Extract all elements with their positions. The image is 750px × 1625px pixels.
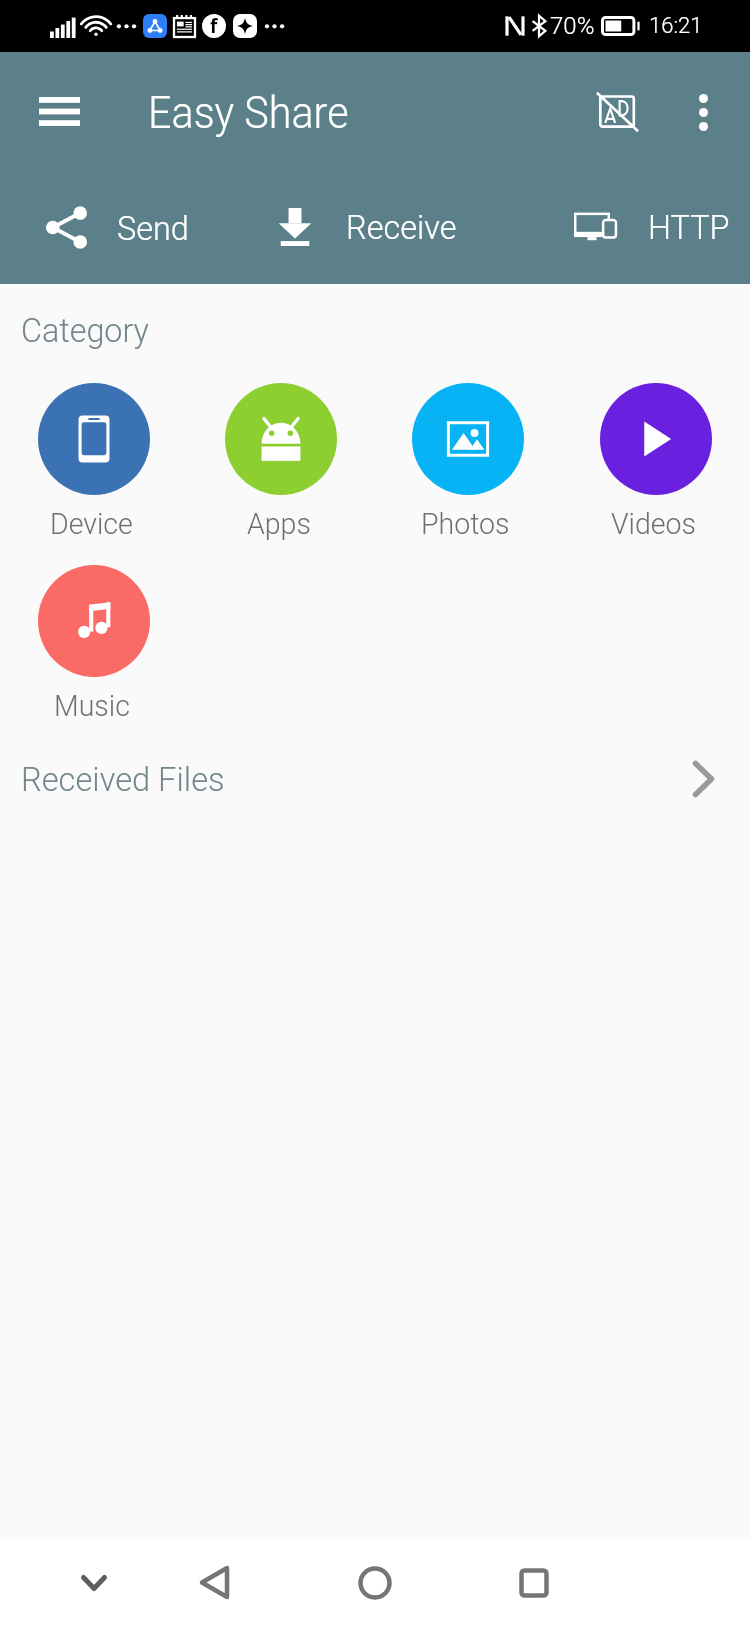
staticText: Receive — [346, 207, 457, 247]
staticText: f — [210, 14, 218, 37]
staticText: 16:21 — [649, 13, 703, 39]
staticText: Received Files — [21, 759, 225, 799]
staticText: Send — [117, 208, 190, 248]
button[interactable]: Apps — [187, 383, 374, 541]
staticText: HTTP — [648, 207, 730, 247]
button[interactable]: More options — [674, 83, 732, 141]
button[interactable]: Hide keyboard — [54, 1540, 134, 1625]
button[interactable]: Remove ads — [588, 83, 646, 141]
button[interactable]: Home — [335, 1540, 415, 1625]
staticText: Device — [50, 506, 134, 541]
button[interactable]: Photos — [374, 383, 562, 541]
button[interactable]: HTTP — [500, 197, 750, 257]
button[interactable]: Videos — [562, 383, 750, 541]
staticText: Easy Share — [148, 86, 349, 139]
button[interactable]: Recent apps — [494, 1540, 574, 1625]
button[interactable]: Received Files — [0, 733, 750, 825]
staticText: Photos — [421, 506, 510, 541]
button[interactable]: Receive — [250, 197, 500, 257]
staticText: Apps — [247, 506, 312, 541]
staticText: Music — [54, 688, 130, 723]
staticText: Category — [21, 310, 149, 350]
button[interactable]: Back — [174, 1540, 254, 1625]
staticText: Videos — [611, 506, 696, 541]
button[interactable]: Menu — [30, 82, 88, 140]
staticText: 70% — [550, 12, 595, 40]
button[interactable]: Music — [0, 565, 187, 723]
button[interactable]: Device — [0, 383, 187, 541]
button[interactable]: Send — [0, 197, 250, 257]
